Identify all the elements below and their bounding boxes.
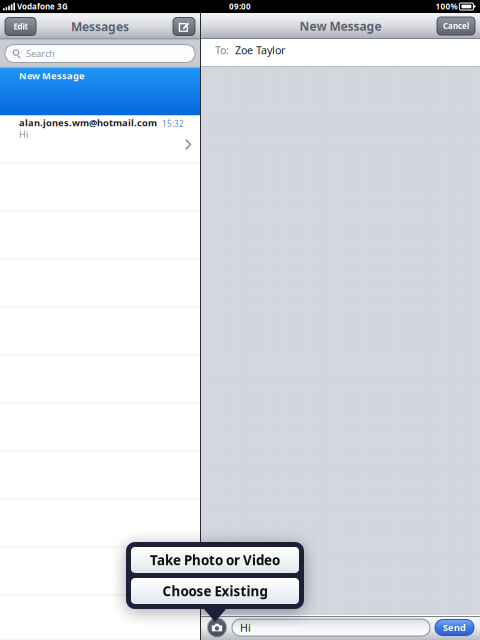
staticText: Take Photo or Video xyxy=(150,551,280,569)
staticText: Zoe Taylor xyxy=(235,43,285,57)
staticText: Hi xyxy=(240,620,251,635)
staticText: 15:32 xyxy=(162,118,184,129)
button[interactable]: Attach photo xyxy=(207,617,227,637)
button[interactable]: Compose new message xyxy=(173,17,195,35)
staticText: Hi xyxy=(19,128,28,140)
staticText: 100% xyxy=(435,1,457,12)
staticText: Send xyxy=(443,621,466,634)
button[interactable]: Search xyxy=(0,44,200,62)
staticText: Edit xyxy=(13,21,27,32)
staticText: New Message xyxy=(19,69,85,82)
staticText: alan.jones.wm@hotmail.com xyxy=(19,116,157,129)
button[interactable]: New Message xyxy=(0,67,200,115)
staticText: Search xyxy=(26,47,55,60)
button[interactable]: Choose Existing xyxy=(131,578,299,604)
staticText: New Message xyxy=(299,18,381,34)
staticText: 09:00 xyxy=(229,1,251,12)
button[interactable]: Take Photo or Video xyxy=(131,547,299,573)
button[interactable]: alan.jones.wm@hotmail.com xyxy=(0,115,200,163)
button[interactable]: Edit xyxy=(5,17,36,35)
button[interactable]: Send xyxy=(435,619,474,635)
staticText: Messages xyxy=(71,18,129,34)
staticText: To: xyxy=(215,43,229,57)
staticText: Choose Existing xyxy=(162,582,267,600)
staticText: Vodafone 3G xyxy=(15,1,68,12)
staticText: Cancel xyxy=(443,21,469,31)
button[interactable]: Cancel xyxy=(437,17,475,35)
